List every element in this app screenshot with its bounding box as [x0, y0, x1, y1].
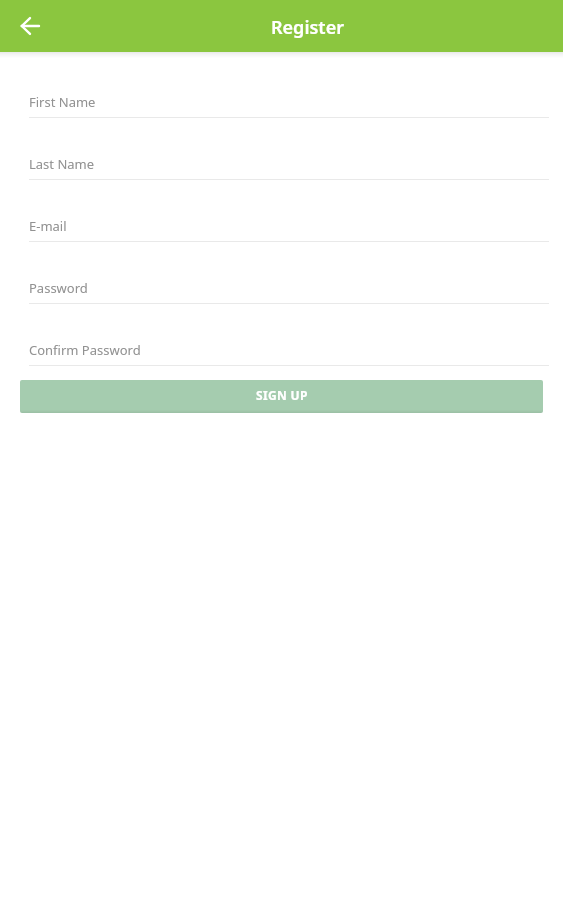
staticText: Last Name	[29, 155, 95, 173]
staticText: Register	[271, 15, 344, 40]
staticText: E-mail	[29, 217, 67, 235]
staticText: First Name	[29, 93, 96, 111]
button[interactable]: Password	[29, 263, 549, 303]
button[interactable]: Last Name	[29, 139, 549, 179]
staticText: Confirm Password	[29, 341, 141, 359]
button[interactable]: E-mail	[29, 201, 549, 241]
button[interactable]: Confirm Password	[29, 325, 549, 365]
button[interactable]: First Name	[29, 77, 549, 117]
button[interactable]: Back	[0, 0, 60, 52]
staticText: SIGN UP	[256, 387, 308, 403]
staticText: Password	[29, 279, 88, 297]
button[interactable]: SIGN UP	[20, 380, 543, 413]
